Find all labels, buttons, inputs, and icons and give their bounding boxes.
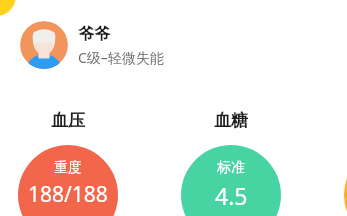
staticText: 标准 (217, 159, 245, 177)
staticText: 血糖 (191, 110, 271, 131)
button[interactable]: 血糖 (191, 110, 271, 131)
staticText: 188/188 (28, 180, 108, 209)
other: 头像 (20, 21, 68, 69)
staticText: 爷爷 (78, 24, 110, 44)
button[interactable]: 血糖 标准 4.5 (181, 145, 281, 216)
button[interactable]: 头像 (20, 21, 164, 69)
button[interactable]: 血压 重度 188/188 (18, 145, 118, 216)
button[interactable]: 血压 (28, 110, 108, 131)
staticText: 4.5 (215, 180, 248, 211)
button[interactable]: 更多指标 (344, 145, 347, 216)
staticText: C级–轻微失能 (78, 48, 164, 67)
staticText: 血压 (28, 110, 108, 131)
staticText: 重度 (54, 159, 82, 177)
